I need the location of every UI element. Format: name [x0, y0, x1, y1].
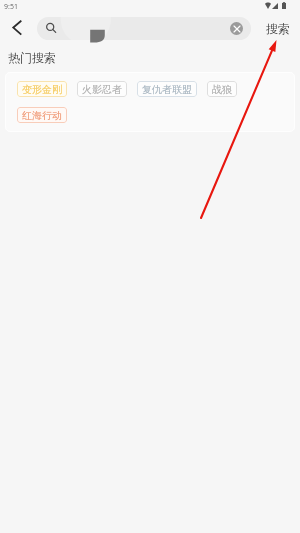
staticText: 复仇者联盟 — [142, 83, 192, 96]
button[interactable]: 搜索 — [256, 13, 300, 44]
button[interactable]: Clear — [230, 22, 243, 35]
button[interactable]: 复仇者联盟 — [137, 81, 197, 97]
staticText: 战狼 — [212, 83, 232, 96]
staticText: 火影忍者 — [82, 83, 122, 96]
staticText: 热门搜索 — [8, 50, 56, 65]
staticText: 搜索 — [266, 21, 290, 36]
button[interactable]: Back — [0, 13, 34, 44]
button[interactable]: 红海行动 — [17, 107, 67, 123]
button[interactable]: 变形金刚 — [17, 81, 67, 97]
staticText: 红海行动 — [22, 109, 62, 122]
staticText: 9:51 — [4, 2, 18, 12]
staticText: 变形金刚 — [22, 83, 62, 96]
button[interactable]: 火影忍者 — [77, 81, 127, 97]
button[interactable]: Clear — [37, 17, 251, 40]
button[interactable]: 战狼 — [207, 81, 237, 97]
